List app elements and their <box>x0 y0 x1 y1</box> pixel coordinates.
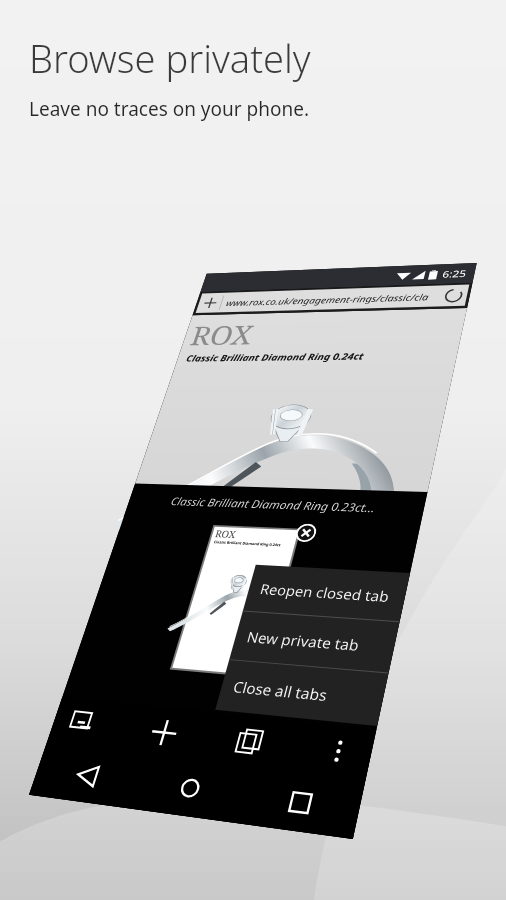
staticText: 6:25 <box>441 267 468 281</box>
button[interactable]: Close tab <box>294 523 318 542</box>
button[interactable]: New tab <box>196 285 469 313</box>
button[interactable]: Reload <box>437 285 469 306</box>
staticText: Classic Brilliant Diamond Ring 0.23ct... <box>169 494 378 516</box>
button[interactable]: New tab <box>130 706 198 759</box>
button[interactable]: Back <box>29 743 145 808</box>
staticText: Reopen closed tab <box>258 579 391 606</box>
staticText: www.rox.co.uk/engagement-rings/classic/c… <box>225 291 441 308</box>
button[interactable]: Tabs <box>215 714 285 770</box>
staticText: ROX <box>186 316 258 352</box>
staticText: Leave no traces on your phone. <box>29 96 310 122</box>
staticText: Close all tabs <box>231 676 330 705</box>
button[interactable]: New private tab <box>229 611 399 672</box>
button[interactable]: Reopen closed tab <box>243 565 410 621</box>
button[interactable]: New tab <box>196 293 224 313</box>
button[interactable]: Cast <box>47 697 117 750</box>
button[interactable]: Home <box>129 755 251 823</box>
staticText: New private tab <box>245 627 362 655</box>
button[interactable]: Close all tabs <box>215 660 388 726</box>
staticText: Classic Brilliant Diamond Ring 0.24ct <box>213 540 282 547</box>
staticText: ROX <box>214 527 238 541</box>
button[interactable]: Recents <box>237 767 365 839</box>
staticText: Classic Brilliant Diamond Ring 0.24ct <box>185 350 365 364</box>
button[interactable]: More options <box>305 723 372 780</box>
button[interactable]: ROX <box>172 527 298 676</box>
staticText: Browse privately <box>29 32 311 84</box>
